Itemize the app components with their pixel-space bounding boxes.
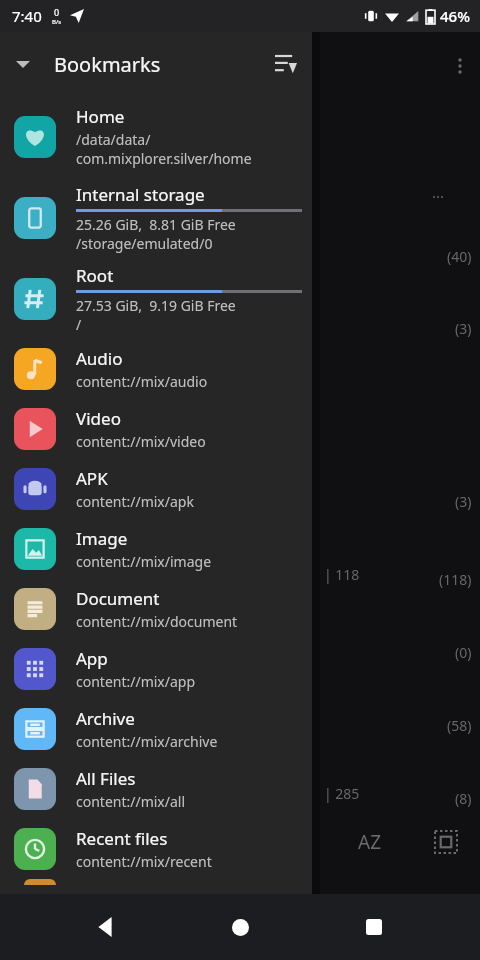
button[interactable]: Recents	[346, 899, 402, 955]
staticText: /storage/emulated/0	[76, 234, 213, 253]
button[interactable]: Document	[0, 579, 312, 639]
staticText: 0	[54, 6, 60, 18]
staticText: content://mix/app	[76, 672, 196, 691]
staticText: content://mix/recent	[76, 852, 212, 871]
staticText: com.mixplorer.silver/home	[76, 149, 252, 168]
staticText: 27.53 GiB, 9.19 GiB Free	[76, 296, 236, 315]
button[interactable]: Internal storage	[0, 177, 312, 258]
staticText: Video	[76, 407, 121, 430]
staticText: Home	[76, 105, 125, 128]
staticText: content://mix/apk	[76, 492, 194, 511]
button[interactable]: Image	[0, 519, 312, 579]
staticText: (58)	[447, 716, 472, 735]
staticText: Image	[76, 527, 128, 550]
staticText: 25.26 GiB, 8.81 GiB Free	[76, 215, 236, 234]
staticText: Root	[76, 264, 114, 287]
staticText: Archive	[76, 707, 135, 730]
staticText: content://mix/document	[76, 612, 238, 631]
button[interactable]: APK	[0, 459, 312, 519]
staticText: Recent files	[76, 827, 168, 850]
button[interactable]: AZ	[342, 820, 398, 864]
button[interactable]: All Files	[0, 759, 312, 819]
button[interactable]: Back	[78, 899, 134, 955]
staticText: | 118	[324, 565, 360, 584]
staticText: (8)	[455, 789, 472, 808]
staticText: (118)	[439, 570, 472, 589]
staticText: (0)	[455, 643, 472, 662]
button[interactable]: Archive	[0, 699, 312, 759]
staticText: Document	[76, 587, 160, 610]
staticText: Audio	[76, 347, 123, 370]
button[interactable]: Collapse	[0, 41, 46, 87]
staticText: (3)	[455, 492, 472, 511]
staticText: All Files	[76, 767, 136, 790]
staticText: B/s	[52, 18, 62, 26]
staticText: content://mix/image	[76, 552, 212, 571]
button[interactable]: Home	[212, 899, 268, 955]
staticText: Bookmarks	[54, 51, 161, 78]
staticText: content://mix/archive	[76, 732, 218, 751]
staticText: /data/data/	[76, 130, 151, 149]
button[interactable]: Select all	[422, 820, 470, 864]
staticText: ...	[432, 182, 445, 202]
staticText: (40)	[447, 247, 472, 266]
staticText: 46%	[440, 6, 470, 26]
staticText: content://mix/audio	[76, 372, 208, 391]
button[interactable]: Video	[0, 399, 312, 459]
staticText: Internal storage	[76, 183, 205, 206]
staticText: | 285	[324, 784, 360, 803]
staticText: AZ	[358, 829, 382, 855]
button[interactable]: App	[0, 639, 312, 699]
staticText: content://mix/all	[76, 792, 186, 811]
button[interactable]: Root	[0, 258, 312, 339]
staticText: APK	[76, 467, 108, 490]
staticText: (3)	[455, 319, 472, 338]
button[interactable]: More options	[440, 46, 480, 86]
staticText: App	[76, 647, 108, 670]
button[interactable]: Home	[0, 96, 312, 177]
staticText: 7:40	[12, 6, 42, 26]
staticText: content://mix/video	[76, 432, 206, 451]
button[interactable]: Sort	[260, 38, 312, 90]
button[interactable]: Audio	[0, 339, 312, 399]
button[interactable]: Recent files	[0, 819, 312, 879]
staticText: /	[76, 315, 82, 334]
